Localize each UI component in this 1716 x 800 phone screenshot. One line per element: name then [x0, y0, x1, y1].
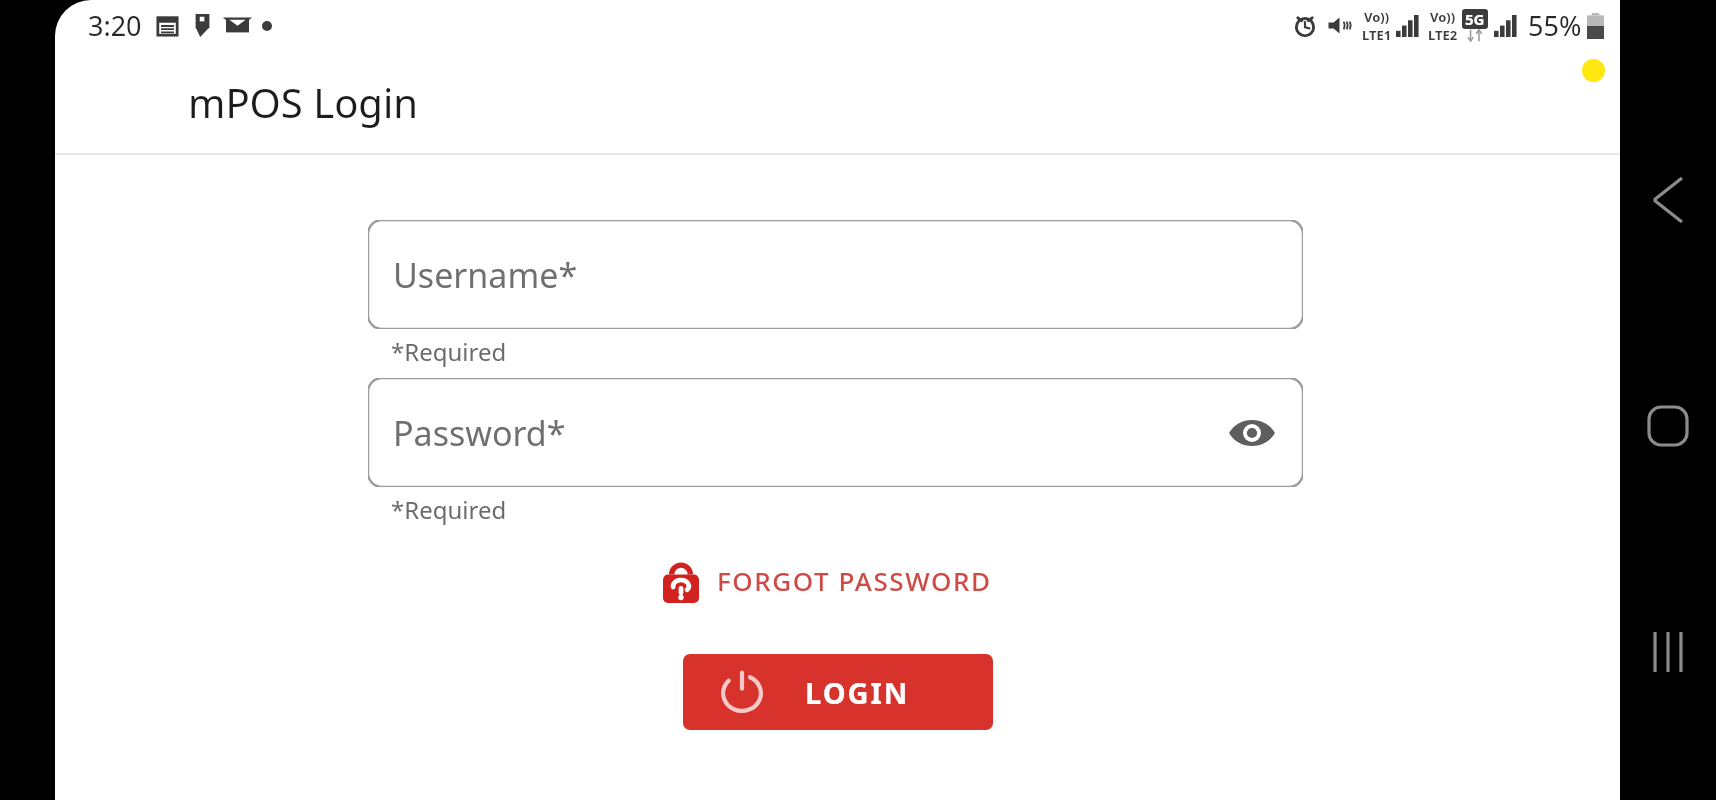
button[interactable]: Home	[1620, 378, 1716, 474]
staticText: 55%	[1528, 7, 1582, 44]
staticText: *Required	[391, 335, 507, 368]
staticText: FORGOT PASSWORD	[717, 563, 992, 598]
button[interactable]: Show password	[1223, 404, 1281, 462]
staticText: mPOS Login	[188, 75, 418, 129]
staticText: Username*	[393, 252, 578, 298]
button[interactable]: FORGOT PASSWORD	[655, 551, 1000, 609]
staticText: Vo))	[1364, 8, 1390, 26]
staticText: LTE1	[1362, 26, 1392, 44]
button[interactable]: Username*	[368, 220, 1303, 329]
staticText: LTE2	[1428, 26, 1458, 44]
staticText: LOGIN	[805, 673, 910, 712]
staticText: 3:20	[88, 7, 142, 44]
button[interactable]: LOGIN	[683, 654, 993, 730]
button[interactable]: Password*	[368, 378, 1303, 487]
staticText: 5G	[1465, 9, 1485, 29]
button[interactable]: Back	[1620, 152, 1716, 248]
staticText: Password*	[393, 410, 566, 456]
button[interactable]: Recent apps	[1620, 604, 1716, 700]
staticText: *Required	[391, 493, 507, 526]
staticText: Vo))	[1430, 8, 1456, 26]
